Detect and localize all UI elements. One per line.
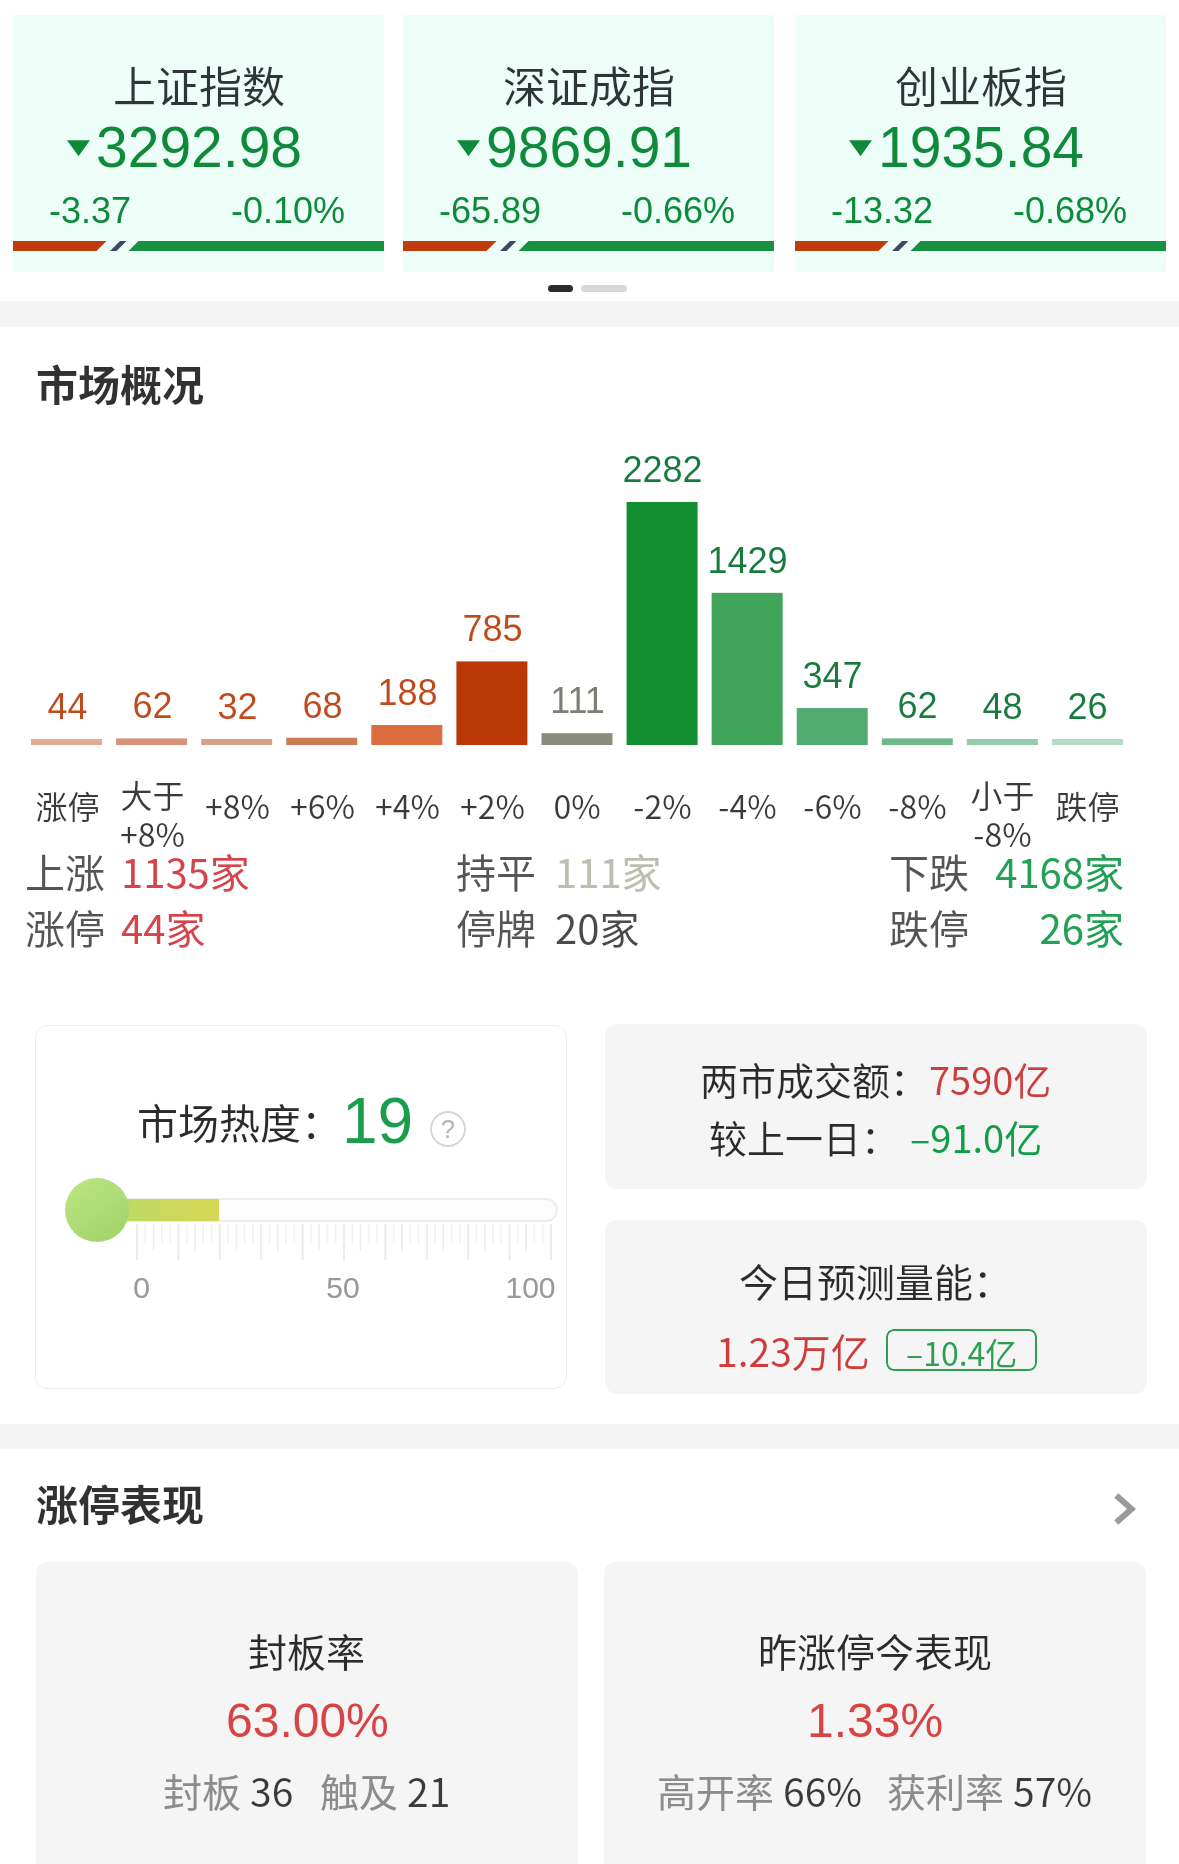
staticText: +4% <box>375 782 440 828</box>
staticText: 7590亿 <box>929 1051 1052 1106</box>
staticText: 涨停 <box>25 898 105 956</box>
staticText: 触及 <box>320 1762 407 1818</box>
button[interactable]: 涨停表现 <box>36 1472 1146 1533</box>
staticText: -8% <box>888 782 947 828</box>
staticText: 62 <box>897 685 938 725</box>
staticText: 今日预测量能： <box>739 1252 1013 1308</box>
other: Help <box>430 1111 466 1147</box>
staticText: 1135家 <box>121 842 250 900</box>
staticText: 44家 <box>121 898 206 956</box>
staticText: -0.10% <box>231 190 346 230</box>
staticText: 9869.91 <box>486 115 693 179</box>
staticText: 跌停 <box>1055 782 1120 828</box>
staticText: +8% <box>205 782 270 828</box>
staticText: 创业板指 <box>895 53 1067 115</box>
button[interactable]: 今日预测量能： <box>605 1220 1147 1394</box>
button[interactable]: 市场热度： <box>35 1025 567 1389</box>
button[interactable]: 创业板指 <box>795 15 1166 272</box>
staticText: 跌停 <box>889 898 969 956</box>
staticText: 涨停 <box>35 782 100 828</box>
staticText: 0% <box>553 782 601 828</box>
staticText: 获利率 <box>887 1762 1013 1818</box>
staticText: -65.89 <box>439 190 542 230</box>
staticText: 1.23万亿 <box>716 1322 870 1378</box>
staticText: 68 <box>302 685 343 725</box>
staticText: 小于 -8% <box>970 771 1035 856</box>
staticText: 188 <box>377 672 438 712</box>
staticText: 高开率 <box>657 1762 783 1818</box>
staticText: 较上一日： <box>709 1109 900 1164</box>
staticText: 3292.98 <box>96 115 303 179</box>
staticText: 深证成指 <box>503 53 675 115</box>
staticText: 347 <box>802 655 863 695</box>
staticText: ? <box>441 1115 455 1143</box>
staticText: 昨涨停今表现 <box>758 1622 993 1678</box>
staticText: 封板 <box>163 1762 250 1818</box>
staticText: 785 <box>462 608 523 648</box>
button[interactable]: 昨涨停今表现 <box>604 1562 1146 1864</box>
staticText: 66% <box>783 1762 863 1818</box>
staticText: 1.33% <box>807 1694 944 1748</box>
button[interactable]: 封板率 <box>36 1562 578 1864</box>
other: More <box>1105 1492 1139 1526</box>
button[interactable]: 深证成指 <box>403 15 774 272</box>
staticText: 44 <box>47 686 88 726</box>
button[interactable]: 上证指数 <box>13 15 384 272</box>
staticText: -13.32 <box>831 190 934 230</box>
staticText: 36 <box>250 1762 294 1818</box>
staticText: 48 <box>982 686 1023 726</box>
staticText: 涨停表现 <box>36 1472 205 1533</box>
staticText: 111家 <box>555 842 662 900</box>
staticText: 市场概况 <box>36 352 205 413</box>
staticText: 20家 <box>555 898 640 956</box>
staticText: 市场热度： <box>137 1091 342 1150</box>
staticText: 62 <box>132 685 173 725</box>
staticText: 上证指数 <box>113 53 285 115</box>
staticText: 上涨 <box>25 842 105 900</box>
staticText: 21 <box>407 1762 451 1818</box>
staticText: 0 <box>133 1271 150 1305</box>
staticText: 2282 <box>622 449 703 489</box>
staticText: +6% <box>290 782 355 828</box>
staticText: 32 <box>217 686 258 726</box>
staticText: –10.4亿 <box>906 1329 1018 1371</box>
staticText: -4% <box>718 782 777 828</box>
staticText: 57% <box>1013 1762 1093 1818</box>
staticText: -6% <box>803 782 862 828</box>
staticText: 26 <box>1067 686 1108 726</box>
staticText: 26家 <box>1039 898 1124 956</box>
staticText: 19 <box>342 1085 414 1157</box>
staticText: 4168家 <box>995 842 1124 900</box>
staticText: 两市成交额： <box>700 1051 929 1106</box>
staticText: 停牌 <box>456 898 536 956</box>
staticText: 111 <box>550 680 605 720</box>
staticText: 下跌 <box>889 842 969 900</box>
staticText: 63.00% <box>226 1694 389 1748</box>
staticText: –91.0亿 <box>910 1109 1043 1164</box>
staticText: +2% <box>460 782 525 828</box>
staticText: -3.37 <box>49 190 132 230</box>
staticText: 1935.84 <box>878 115 1085 179</box>
staticText: 1429 <box>707 540 788 580</box>
button[interactable]: 两市成交额： <box>605 1024 1147 1189</box>
staticText: -0.66% <box>621 190 736 230</box>
staticText: 封板率 <box>248 1622 366 1678</box>
staticText: 大于 +8% <box>120 771 185 856</box>
staticText: -0.68% <box>1013 190 1128 230</box>
staticText: 持平 <box>456 842 536 900</box>
staticText: -2% <box>633 782 692 828</box>
button[interactable]: Page 2 <box>581 285 627 292</box>
button[interactable]: Page 1 <box>548 285 573 292</box>
staticText: 50 <box>326 1271 360 1305</box>
staticText: 100 <box>505 1271 556 1305</box>
